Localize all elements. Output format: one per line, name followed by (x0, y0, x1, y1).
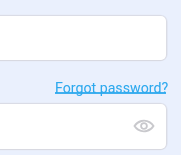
staticText: Forgot password? (55, 80, 169, 97)
button[interactable]: Toggle password visibility (131, 113, 157, 139)
button[interactable] (0, 16, 167, 61)
button[interactable]: Forgot password? (53, 76, 168, 98)
button[interactable] (0, 104, 167, 150)
